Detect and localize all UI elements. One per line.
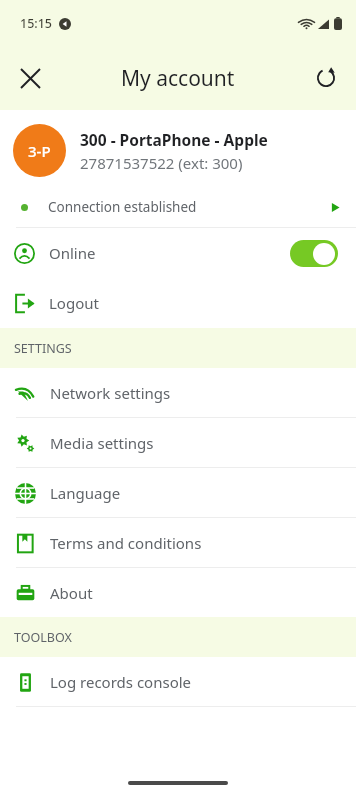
staticText: TOOLBOX (14, 629, 72, 646)
staticText: SETTINGS (14, 340, 72, 357)
staticText: Online (49, 243, 96, 263)
button[interactable]: Online toggle (290, 240, 338, 267)
staticText: Log records console (50, 672, 192, 692)
button[interactable]: Logout (0, 278, 356, 328)
button[interactable]: Online (0, 228, 356, 278)
button[interactable]: Close (8, 56, 52, 100)
button[interactable]: 3-P (0, 110, 356, 187)
staticText: Logout (49, 293, 99, 313)
staticText: My account (121, 64, 235, 93)
staticText: Media settings (50, 433, 154, 453)
button[interactable]: Terms and conditions (0, 518, 356, 567)
staticText: 300 - PortaPhone - Apple (80, 129, 268, 150)
staticText: Language (50, 483, 121, 503)
staticText: 3-P (28, 141, 51, 161)
button[interactable]: Language (0, 468, 356, 517)
button[interactable]: Network settings (0, 368, 356, 417)
button[interactable]: About (0, 568, 356, 617)
button[interactable]: Connection established (0, 187, 356, 227)
staticText: 15:15 (20, 15, 53, 32)
staticText: 27871537522 (ext: 300) (80, 153, 243, 173)
staticText: Network settings (50, 383, 171, 403)
staticText: Connection established (48, 198, 197, 216)
button[interactable]: Refresh (304, 56, 348, 100)
button[interactable]: Media settings (0, 418, 356, 467)
button[interactable]: Log records console (0, 657, 356, 706)
staticText: About (50, 583, 93, 603)
staticText: Terms and conditions (50, 533, 202, 553)
